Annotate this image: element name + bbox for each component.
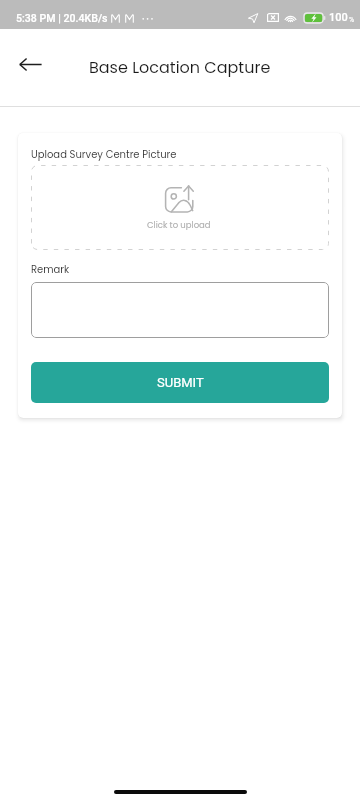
staticText: % (349, 16, 355, 24)
staticText: Upload Survey Centre Picture (31, 147, 177, 161)
staticText: 5:38 PM | 20.4KB/s (16, 12, 108, 24)
button[interactable] (31, 282, 329, 338)
button[interactable]: SUBMIT (31, 362, 329, 403)
staticText: 100 (329, 11, 348, 24)
staticText: Base Location Capture (89, 56, 271, 78)
button[interactable]: Click to upload (31, 165, 329, 250)
staticText: Remark (31, 262, 70, 276)
button[interactable]: Back (8, 42, 52, 86)
staticText: Click to upload (147, 219, 211, 231)
staticText: SUBMIT (157, 375, 204, 390)
